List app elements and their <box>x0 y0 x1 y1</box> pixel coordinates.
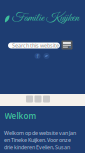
button[interactable]: Facebook <box>34 53 40 59</box>
staticText: f <box>36 52 38 60</box>
staticText: Familie Kuijken <box>12 10 80 25</box>
staticText: Welkom <box>4 111 36 121</box>
button[interactable]: Search this website <box>8 42 60 48</box>
staticText: Search this website <box>12 42 59 49</box>
staticText: Welkom op de website van Jan en Tineke K… <box>4 129 76 151</box>
button[interactable]: Twitter <box>43 53 49 59</box>
button[interactable]: Menu <box>61 40 72 49</box>
